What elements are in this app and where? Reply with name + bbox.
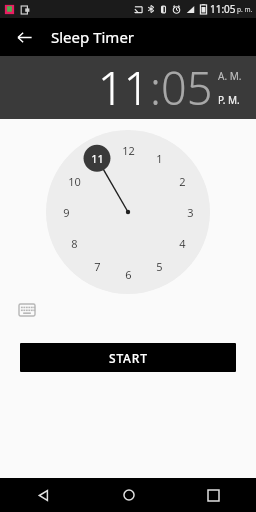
staticText: 11:05 — [210, 2, 236, 16]
button[interactable]: START — [20, 343, 236, 372]
button[interactable]: P. M. — [218, 93, 240, 107]
button[interactable]: 1 — [149, 151, 169, 165]
staticText: P. M. — [218, 93, 240, 107]
staticText: 9 — [63, 205, 70, 219]
staticText: p. m. — [237, 5, 253, 14]
staticText: 05 — [161, 57, 213, 118]
staticText: 12 — [122, 143, 135, 157]
button[interactable]: 7 — [87, 259, 107, 273]
staticText: 2 — [179, 174, 186, 188]
button[interactable]: Switch to text input — [16, 299, 38, 321]
button[interactable]: 3 — [180, 205, 200, 219]
staticText: 8 — [71, 236, 78, 250]
button[interactable]: 8 — [64, 236, 84, 250]
button[interactable]: 9 — [56, 205, 76, 219]
button[interactable]: 05 — [161, 57, 213, 118]
button[interactable]: 12 — [118, 143, 138, 157]
button[interactable]: Back — [0, 478, 86, 512]
staticText: START — [109, 350, 148, 366]
staticText: 10 — [68, 174, 81, 188]
staticText: 7 — [94, 259, 101, 273]
button[interactable]: 6 — [118, 267, 138, 281]
button[interactable]: 10 — [64, 174, 84, 188]
button[interactable] — [46, 130, 210, 294]
staticText: : — [150, 57, 161, 118]
button[interactable]: Back — [6, 19, 42, 55]
button[interactable]: 4 — [172, 236, 192, 250]
button[interactable]: 11 — [87, 151, 107, 165]
staticText: 11 — [98, 57, 150, 118]
button[interactable]: Recent apps — [171, 478, 256, 512]
button[interactable]: 2 — [172, 174, 192, 188]
staticText: 6 — [125, 267, 132, 281]
button[interactable]: Home — [86, 478, 171, 512]
staticText: Sleep Timer — [51, 27, 135, 47]
staticText: 11 — [91, 151, 104, 165]
staticText: 3 — [187, 205, 194, 219]
button[interactable]: 5 — [149, 259, 169, 273]
button[interactable]: 11 — [98, 57, 150, 118]
button[interactable]: A. M. — [218, 69, 242, 83]
staticText: 4 — [179, 236, 186, 250]
staticText: 5 — [156, 259, 163, 273]
staticText: 1 — [156, 151, 163, 165]
staticText: A. M. — [218, 69, 242, 83]
